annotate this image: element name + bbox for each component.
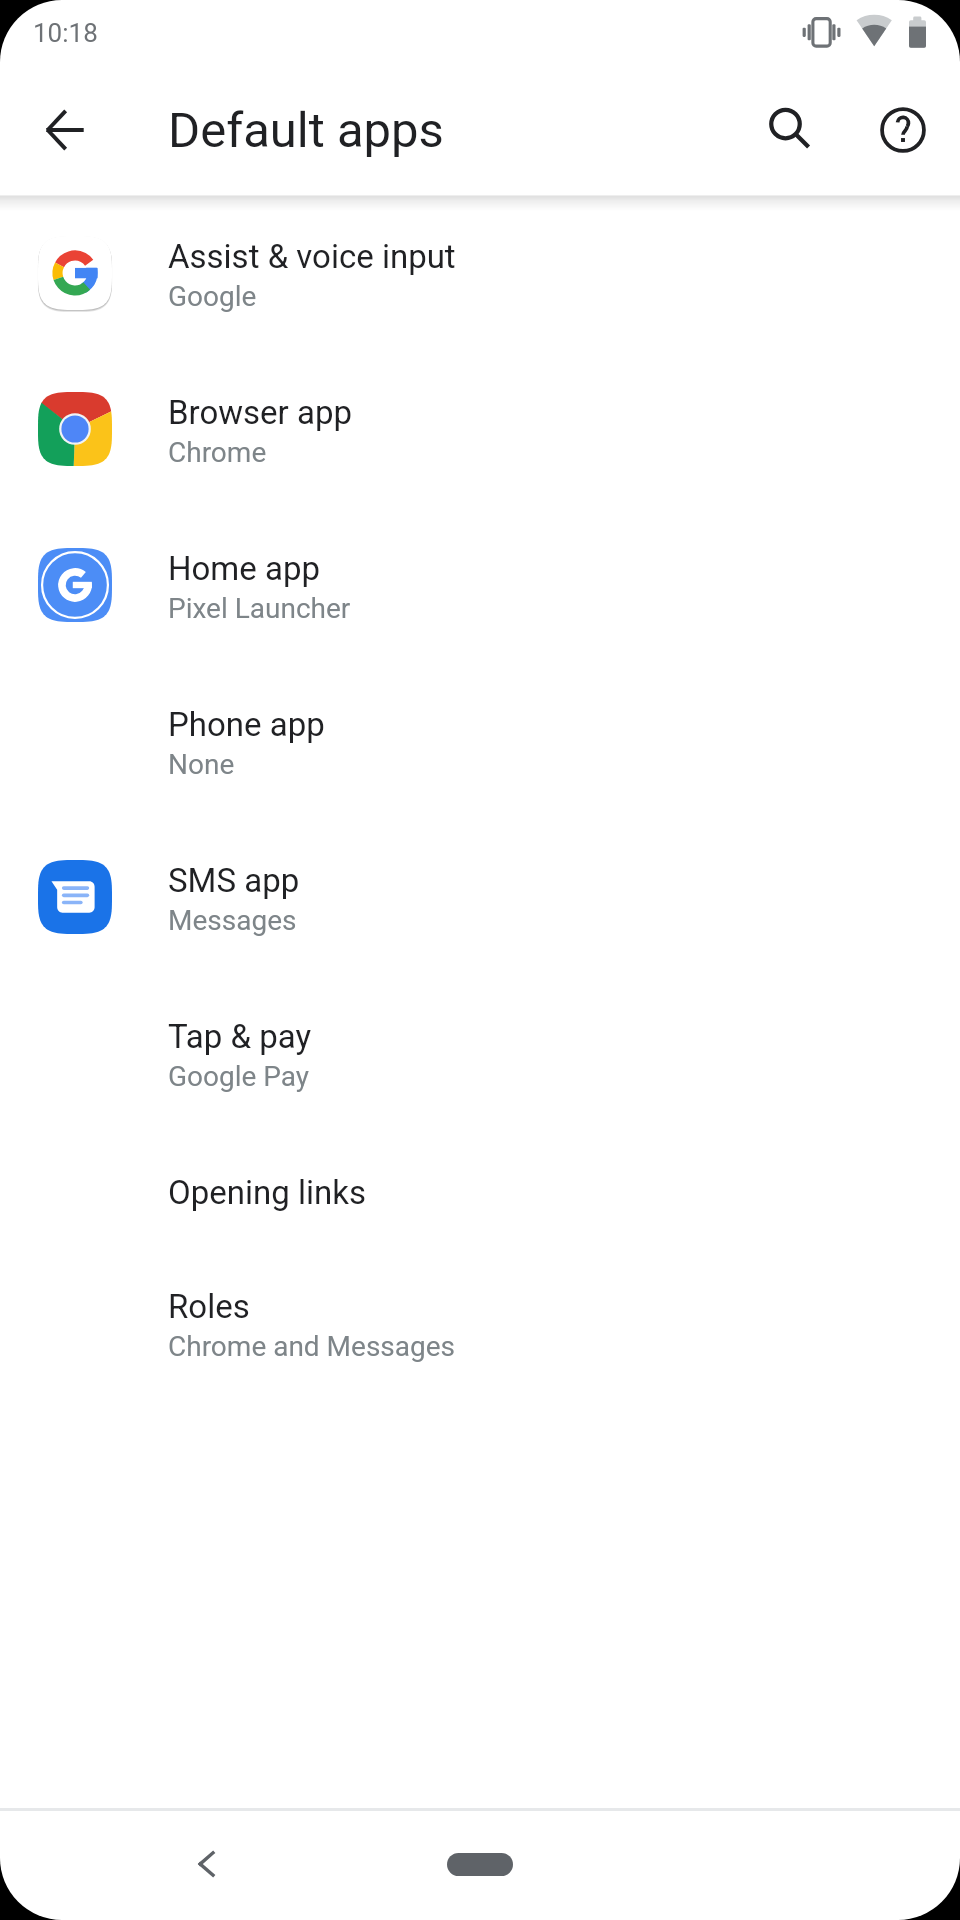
staticText: Google <box>168 280 257 313</box>
staticText: Google Pay <box>168 1060 310 1093</box>
staticText: Home app <box>168 549 320 588</box>
staticText: Pixel Launcher <box>168 592 351 625</box>
button[interactable]: Opening links <box>0 1144 960 1258</box>
button[interactable]: Phone app <box>0 676 960 832</box>
button[interactable]: Back <box>159 1816 255 1912</box>
button[interactable]: Browser app <box>0 364 960 520</box>
staticText: None <box>168 748 235 781</box>
staticText: Chrome <box>168 436 267 469</box>
button[interactable]: Back <box>17 82 113 178</box>
button[interactable]: Search <box>742 82 838 178</box>
staticText: Phone app <box>168 705 325 744</box>
staticText: Browser app <box>168 393 352 432</box>
staticText: Tap & pay <box>168 1017 312 1056</box>
button[interactable]: Tap & pay <box>0 988 960 1144</box>
button[interactable]: Home <box>416 1816 544 1912</box>
staticText: Messages <box>168 904 297 937</box>
staticText: SMS app <box>168 861 300 900</box>
button[interactable]: Home app <box>0 520 960 676</box>
button[interactable]: Assist & voice input <box>0 208 960 364</box>
button[interactable]: SMS app <box>0 832 960 988</box>
staticText: 10:18 <box>33 18 98 48</box>
staticText: Chrome and Messages <box>168 1330 456 1363</box>
staticText: Roles <box>168 1287 250 1326</box>
staticText: Default apps <box>168 102 444 159</box>
staticText: Opening links <box>168 1173 366 1212</box>
staticText: Assist & voice input <box>168 237 456 276</box>
button[interactable]: Roles <box>0 1258 960 1414</box>
button[interactable]: Help <box>855 82 951 178</box>
